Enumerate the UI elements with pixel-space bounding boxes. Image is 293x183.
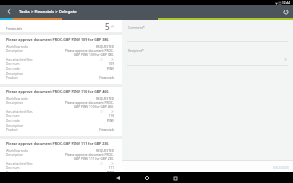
staticText: Workflow todo — [6, 149, 28, 153]
staticText: PINV — [106, 67, 114, 71]
button[interactable]: Back — [103, 173, 132, 183]
staticText: Doc code — [6, 171, 20, 175]
button[interactable]: Recipient — [122, 41, 293, 65]
staticText: Recipient — [128, 49, 142, 53]
staticText: 5 — [105, 21, 110, 32]
staticText: Financials — [99, 76, 114, 80]
button[interactable]: Recents — [161, 173, 190, 183]
staticText: Doc num — [6, 166, 20, 170]
staticText: DELEGATE — [273, 165, 290, 169]
staticText: Please approve document PROC- GBP PINV 1… — [64, 101, 114, 109]
staticText: REQUESTED — [96, 45, 114, 49]
staticText: Comment — [128, 26, 143, 30]
button[interactable]: Financials — [0, 20, 122, 32]
button[interactable]: Please approve document PROC-GBP PINV 11… — [0, 139, 122, 172]
staticText: Product — [6, 128, 18, 132]
staticText: 12:44 — [282, 1, 291, 5]
button[interactable]: Refresh — [279, 5, 293, 18]
staticText: Financials — [6, 26, 23, 31]
staticText: * — [143, 26, 145, 30]
staticText: Description — [6, 124, 24, 128]
staticText: PINV — [106, 119, 114, 123]
staticText: REQUESTED — [96, 97, 114, 101]
button[interactable]: DELEGATE — [270, 163, 293, 171]
button[interactable]: Home — [132, 173, 161, 183]
staticText: Please approve document PROC-GBP PINV 11… — [6, 141, 110, 146]
staticText: Workflow todo — [6, 97, 28, 101]
staticText: 110 — [108, 114, 114, 118]
staticText: Please approve document PROC-GBP PINV 10… — [6, 37, 110, 42]
button[interactable]: Please approve document PROC-GBP PINV 10… — [0, 35, 122, 84]
staticText: Description — [6, 49, 24, 53]
staticText: PINV — [106, 171, 114, 175]
staticText: 111 — [108, 166, 114, 170]
staticText: * — [142, 49, 144, 53]
staticText: 109 — [108, 62, 114, 66]
staticText: Please approve document PROC- GBP PINV 1… — [64, 49, 114, 57]
button[interactable]: Please approve document PROC-GBP PINV 11… — [0, 87, 122, 136]
staticText: Product — [6, 76, 18, 80]
staticText: Doc num — [6, 62, 20, 66]
staticText: Has attached files — [6, 110, 33, 114]
staticText: Workflow todo — [6, 45, 28, 49]
staticText: Doc num — [6, 114, 20, 118]
staticText: REQUESTED — [96, 149, 114, 153]
staticText: Please approve document PROC-GBP PINV 11… — [6, 89, 110, 94]
staticText: Has attached files — [6, 162, 33, 166]
staticText: Financials — [99, 128, 114, 132]
button[interactable]: Back — [0, 5, 17, 18]
staticText: Doc code — [6, 67, 20, 71]
staticText: Tasks > Financials > Delegate — [19, 9, 77, 15]
staticText: Description — [6, 72, 24, 76]
staticText: Doc code — [6, 119, 20, 123]
staticText: Description — [6, 153, 24, 157]
staticText: Please approve document PROC- GBP PINV 1… — [64, 153, 114, 161]
staticText: Description — [6, 101, 24, 105]
staticText: Has attached files — [6, 58, 33, 62]
